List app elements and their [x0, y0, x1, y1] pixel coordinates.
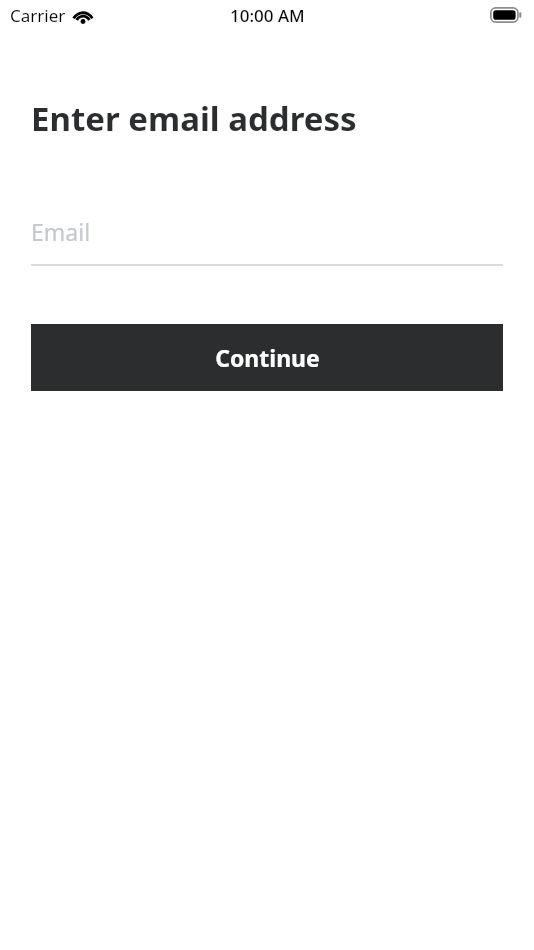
- staticText: 10:00 AM: [230, 4, 305, 27]
- button[interactable]: Email: [31, 213, 503, 266]
- staticText: Carrier: [10, 4, 66, 27]
- button[interactable]: Continue: [31, 324, 503, 391]
- other: Wi-Fi signal: [72, 8, 94, 24]
- other: Battery full: [490, 7, 522, 23]
- staticText: Enter email address: [31, 96, 357, 141]
- staticText: Continue: [215, 342, 320, 373]
- staticText: Email: [31, 216, 91, 247]
